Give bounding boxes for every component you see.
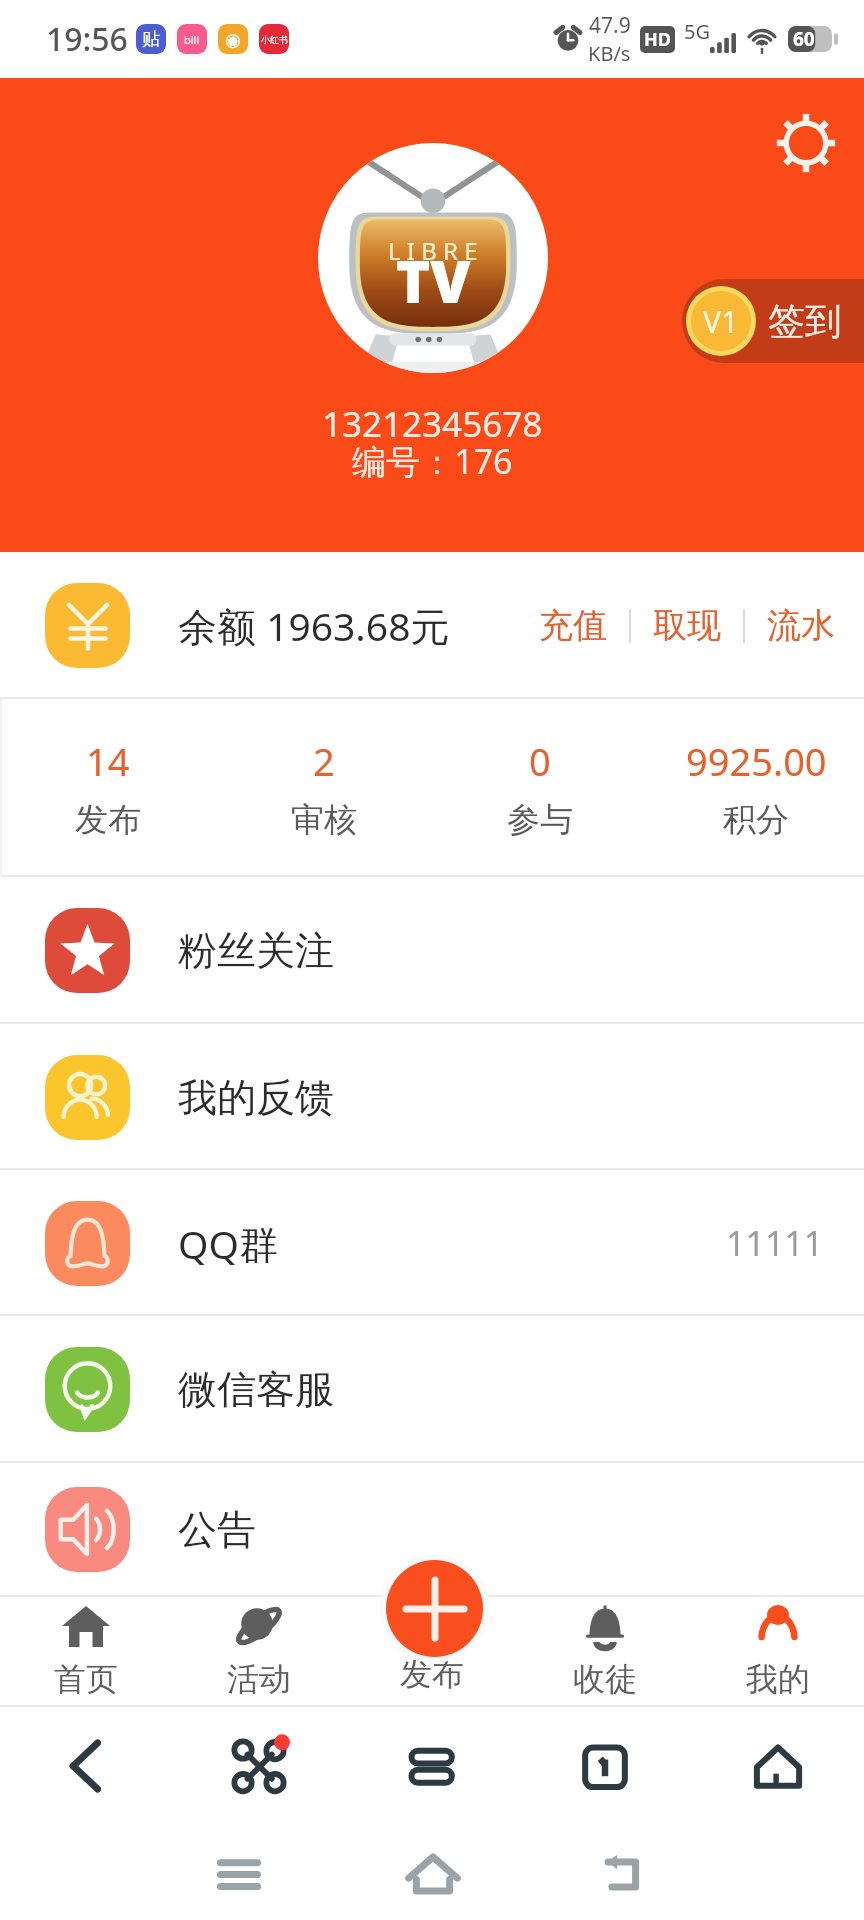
staticText: V1 [703, 301, 739, 342]
staticText: 公告 [178, 1505, 256, 1554]
button[interactable]: 0 [432, 699, 648, 877]
staticText: 13212345678 [322, 400, 543, 448]
button[interactable]: 返回 [0, 1707, 172, 1825]
staticText: KB/s [588, 40, 631, 67]
button[interactable]: 返回 [529, 1825, 722, 1920]
staticText: 0 [529, 735, 551, 787]
button[interactable]: 发布 [345, 1595, 518, 1705]
button[interactable]: 主页 [691, 1707, 864, 1825]
button[interactable]: 2 [216, 699, 432, 877]
staticText: 粉丝关注 [178, 926, 334, 975]
staticText: 19:56 [46, 17, 128, 61]
button[interactable]: 我的 [691, 1595, 864, 1705]
button[interactable]: 窗口 [518, 1707, 691, 1825]
staticText: 编号：176 [352, 438, 513, 484]
button[interactable]: 粉丝关注 [0, 877, 864, 1024]
staticText: 活动 [227, 1659, 291, 1699]
button[interactable]: 14 [0, 699, 216, 877]
staticText: HD [644, 27, 671, 52]
button[interactable]: 微信客服 [0, 1316, 864, 1463]
staticText: 贴 [142, 28, 160, 51]
button[interactable]: 分享 [172, 1707, 345, 1825]
button[interactable]: 收徒 [518, 1595, 691, 1705]
staticText: 60 [793, 26, 815, 52]
staticText: 5G [684, 18, 710, 45]
button[interactable]: 菜单 [142, 1825, 336, 1920]
button[interactable]: 标签页 [345, 1707, 518, 1825]
staticText: 余额 1963.68元 [178, 599, 450, 652]
staticText: 首页 [54, 1659, 118, 1699]
staticText: 2 [313, 735, 335, 787]
button[interactable]: 活动 [172, 1595, 345, 1705]
staticText: TV [396, 241, 471, 320]
button[interactable]: 头像 [318, 143, 548, 373]
staticText: 签到 [768, 298, 842, 345]
staticText: bili [184, 32, 200, 47]
button[interactable]: 发布 [386, 1560, 483, 1657]
staticText: QQ群 [178, 1217, 278, 1270]
staticText: 发布 [75, 799, 141, 841]
button[interactable]: QQ群 [0, 1170, 864, 1316]
staticText: 我的 [746, 1659, 810, 1699]
button[interactable]: 主屏 [336, 1825, 529, 1920]
staticText: 9925.00 [686, 735, 827, 787]
staticText: L I B R E [388, 234, 478, 267]
staticText: 积分 [723, 799, 789, 841]
button[interactable]: 余额 1963.68元 [0, 552, 864, 699]
staticText: 14 [86, 735, 130, 787]
button[interactable]: 流水 [761, 604, 841, 647]
button[interactable]: 9925.00 [648, 699, 864, 877]
staticText: 11111 [726, 1220, 824, 1266]
staticText: 参与 [507, 799, 573, 841]
staticText: 收徒 [573, 1659, 637, 1699]
button[interactable]: 设置 [766, 103, 846, 183]
staticText: 微信客服 [178, 1365, 334, 1414]
staticText: 47.9 [589, 11, 631, 40]
staticText: 小红书 [261, 34, 288, 45]
button[interactable]: 取现 [647, 604, 727, 647]
staticText: 发布 [400, 1654, 464, 1694]
button[interactable]: V1 [682, 279, 864, 363]
staticText: 审核 [291, 799, 357, 841]
button[interactable]: 首页 [0, 1595, 172, 1705]
staticText: ◉ [225, 29, 241, 50]
staticText: 我的反馈 [178, 1073, 334, 1122]
button[interactable]: 我的反馈 [0, 1024, 864, 1170]
button[interactable]: 充值 [533, 604, 613, 647]
button[interactable]: 公告 [0, 1463, 864, 1595]
